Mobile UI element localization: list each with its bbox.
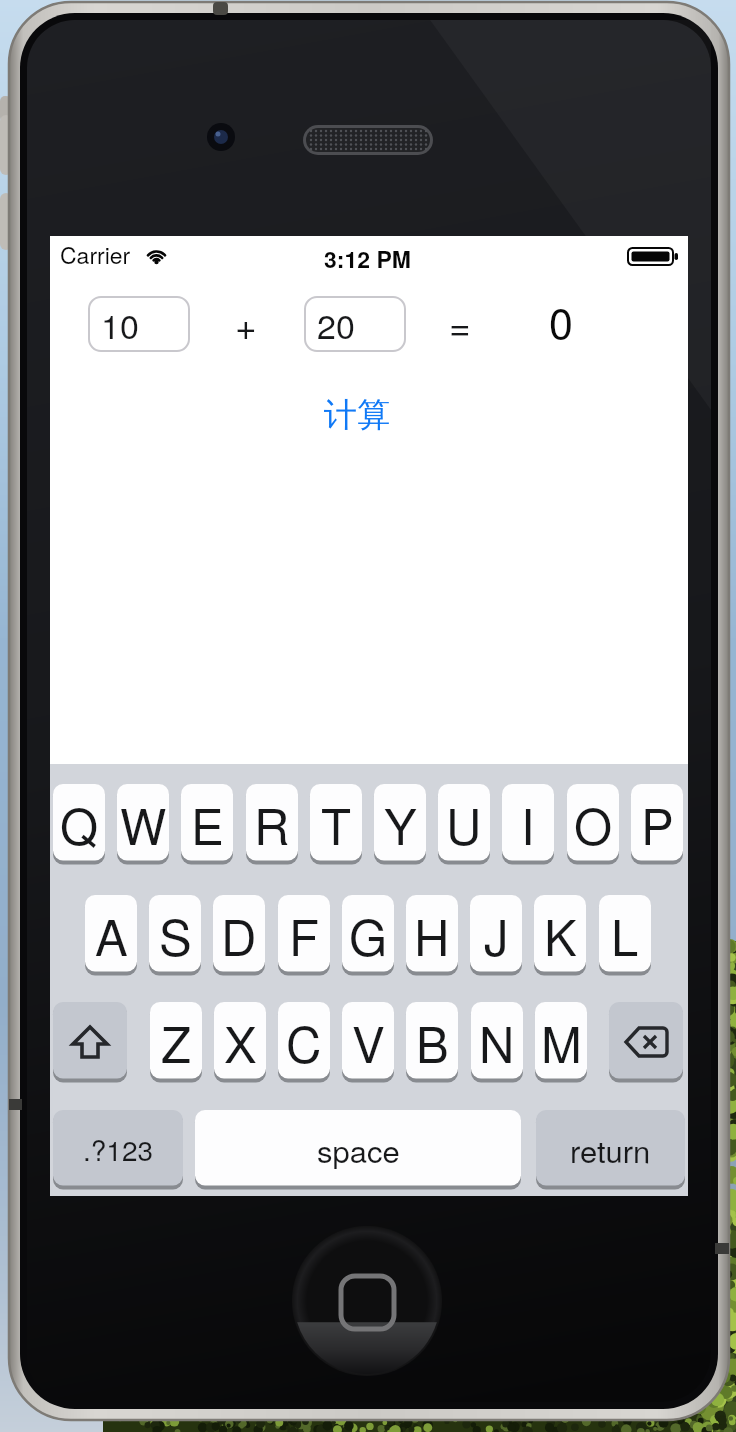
button[interactable]: 计算 (307, 390, 407, 440)
staticText: = (449, 298, 471, 351)
button[interactable]: H (406, 895, 458, 974)
staticText: H (414, 900, 450, 970)
staticText: X (224, 1007, 257, 1077)
staticText: R (254, 789, 290, 859)
staticText: V (352, 1007, 385, 1077)
button[interactable]: U (438, 784, 490, 863)
button[interactable]: L (599, 895, 651, 974)
staticText: return (570, 1127, 651, 1171)
staticText: Z (161, 1007, 191, 1077)
button[interactable]: Y (374, 784, 426, 863)
button[interactable] (609, 1002, 683, 1081)
staticText: J (484, 900, 509, 970)
button[interactable]: R (246, 784, 298, 863)
button[interactable]: 20 (304, 296, 406, 352)
staticText: 3:12 PM (324, 242, 411, 275)
staticText: 0 (549, 290, 573, 352)
staticText: Q (60, 789, 99, 859)
button[interactable]: Z (150, 1002, 202, 1081)
button[interactable]: W (117, 784, 169, 863)
staticText: C (286, 1007, 322, 1077)
staticText: T (321, 789, 351, 859)
staticText: U (446, 789, 482, 859)
staticText: L (611, 900, 639, 970)
button[interactable]: P (631, 784, 683, 863)
button[interactable]: J (470, 895, 522, 974)
button[interactable]: N (471, 1002, 523, 1081)
button[interactable]: S (149, 895, 201, 974)
button[interactable]: .?123 (53, 1110, 183, 1188)
staticText: S (159, 900, 192, 970)
button[interactable]: E (181, 784, 233, 863)
staticText: O (574, 789, 613, 859)
staticText: K (544, 900, 577, 970)
button[interactable] (53, 1002, 127, 1081)
button[interactable]: O (567, 784, 619, 863)
button[interactable]: space (195, 1110, 521, 1188)
staticText: Carrier (60, 238, 131, 269)
button[interactable]: A (85, 895, 137, 974)
staticText: .?123 (83, 1129, 154, 1169)
button[interactable]: K (534, 895, 586, 974)
staticText: E (191, 789, 224, 859)
staticText: W (120, 789, 167, 859)
staticText: 10 (101, 300, 139, 349)
button[interactable]: X (214, 1002, 266, 1081)
staticText: space (317, 1127, 400, 1171)
button[interactable]: T (310, 784, 362, 863)
staticText: P (641, 789, 674, 859)
staticText: Y (384, 789, 417, 859)
staticText: 计算 (324, 394, 390, 436)
button[interactable]: D (213, 895, 265, 974)
button[interactable]: F (278, 895, 330, 974)
staticText: F (289, 900, 319, 970)
staticText: G (349, 900, 388, 970)
button[interactable]: G (342, 895, 394, 974)
button[interactable]: M (535, 1002, 587, 1081)
staticText: I (521, 789, 535, 859)
staticText: D (221, 900, 257, 970)
button[interactable]: I (502, 784, 554, 863)
button[interactable]: C (278, 1002, 330, 1081)
button[interactable]: V (342, 1002, 394, 1081)
button[interactable]: return (536, 1110, 685, 1188)
button[interactable]: Q (53, 784, 105, 863)
button[interactable]: 10 (88, 296, 190, 352)
staticText: + (235, 298, 257, 351)
staticText: A (95, 900, 128, 970)
staticText: B (416, 1007, 449, 1077)
staticText: 20 (317, 300, 355, 349)
staticText: M (541, 1007, 582, 1077)
staticText: N (479, 1007, 515, 1077)
button[interactable]: B (406, 1002, 458, 1081)
